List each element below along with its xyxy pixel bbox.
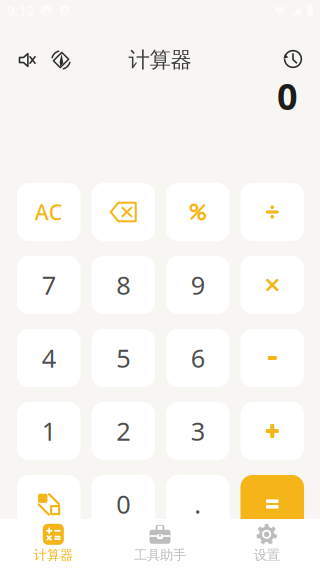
- button[interactable]: 7: [17, 256, 80, 314]
- staticText: 6: [191, 341, 205, 375]
- staticText: 5: [116, 341, 130, 375]
- staticText: 7: [42, 268, 56, 302]
- button[interactable]: History: [276, 42, 310, 76]
- button[interactable]: 6: [166, 329, 229, 387]
- staticText: 2: [116, 414, 130, 448]
- staticText: AC: [35, 198, 63, 226]
- button[interactable]: AC: [17, 183, 80, 241]
- button[interactable]: 工具助手: [107, 519, 213, 567]
- button[interactable]: Mute: [10, 43, 44, 77]
- button[interactable]: 0: [91, 475, 155, 533]
- staticText: 工具助手: [134, 547, 186, 563]
- button[interactable]: 2: [91, 402, 155, 460]
- button[interactable]: Multiply: [240, 256, 304, 314]
- button[interactable]: Rotation lock: [44, 43, 78, 77]
- button[interactable]: Minus: [240, 329, 304, 387]
- button[interactable]: Percent: [166, 183, 229, 241]
- staticText: 3: [191, 414, 205, 448]
- button[interactable]: 5: [91, 329, 155, 387]
- button[interactable]: Plus: [240, 402, 304, 460]
- button[interactable]: 设置: [213, 519, 320, 567]
- button[interactable]: .: [166, 475, 229, 533]
- staticText: 计算器: [34, 547, 73, 563]
- button[interactable]: 计算器: [0, 519, 107, 567]
- staticText: 0: [116, 487, 130, 521]
- button[interactable]: Divide: [240, 183, 304, 241]
- button[interactable]: 3: [166, 402, 229, 460]
- staticText: .: [194, 487, 201, 521]
- staticText: 计算器: [128, 47, 191, 73]
- staticText: 8: [116, 268, 130, 302]
- button[interactable]: 9: [166, 256, 229, 314]
- button[interactable]: Equals: [240, 475, 304, 533]
- button[interactable]: Backspace: [91, 183, 155, 241]
- staticText: 4: [42, 341, 56, 375]
- staticText: 0: [277, 72, 298, 120]
- button[interactable]: 4: [17, 329, 80, 387]
- staticText: 9: [191, 268, 205, 302]
- button[interactable]: 8: [91, 256, 155, 314]
- button[interactable]: Unit convert: [17, 475, 80, 533]
- staticText: 1: [42, 414, 56, 448]
- button[interactable]: 1: [17, 402, 80, 460]
- staticText: 设置: [254, 547, 280, 563]
